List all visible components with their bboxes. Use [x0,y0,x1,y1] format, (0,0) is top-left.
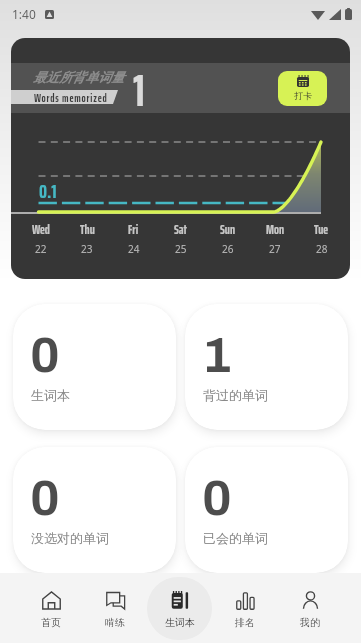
button[interactable]: Profile [277,577,342,640]
staticText: 24 [128,242,140,256]
button[interactable]: 0 [13,447,176,573]
staticText: 1 [202,328,232,382]
button[interactable]: 1 [185,304,348,430]
staticText: 最近所背单词量 [33,69,124,85]
staticText: 28 [316,242,328,256]
staticText: Fri [128,219,139,239]
button[interactable]: 0 [13,304,176,430]
staticText: 啃练 [105,616,125,629]
staticText: 我的 [300,616,320,629]
staticText: 已会的单词 [203,530,268,546]
staticText: Words memorized [34,90,108,107]
staticText: Thu [80,219,95,239]
staticText: 排名 [235,616,255,629]
button[interactable]: Ranking [212,577,277,640]
staticText: 22 [35,242,47,256]
staticText: 生词本 [165,616,195,629]
staticText: 27 [269,242,281,256]
button[interactable]: Vocabulary [147,577,212,640]
button[interactable]: 0 [185,447,348,573]
button[interactable]: Home [19,577,83,640]
staticText: 没选对的单词 [31,530,109,546]
staticText: 生词本 [31,387,70,403]
staticText: Sat [174,219,187,239]
button[interactable]: Practice [83,577,147,640]
staticText: 26 [222,242,234,256]
staticText: 0 [30,471,60,525]
staticText: 23 [81,242,93,256]
staticText: 打卡 [294,90,312,101]
staticText: 0 [30,328,60,382]
staticText: Sun [220,219,235,239]
button[interactable]: 打卡 [278,71,327,106]
staticText: Mon [266,219,284,239]
staticText: Tue [314,219,329,239]
staticText: 首页 [41,616,61,629]
staticText: Wed [32,219,50,239]
staticText: 背过的单词 [203,387,268,403]
staticText: 1 [133,56,145,106]
staticText: 0.1 [39,175,57,206]
staticText: 0 [202,471,232,525]
staticText: 25 [175,242,187,256]
staticText: 1:40 [12,6,36,22]
